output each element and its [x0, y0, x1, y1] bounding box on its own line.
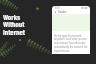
- staticText: Works Without Internet: [3, 12, 26, 37]
- button[interactable]: Back: [54, 11, 57, 14]
- staticText: Offline apps let you work anywhere, even…: [54, 34, 88, 52]
- staticText: Guides: [58, 10, 67, 14]
- staticText: 9:41: [55, 6, 60, 10]
